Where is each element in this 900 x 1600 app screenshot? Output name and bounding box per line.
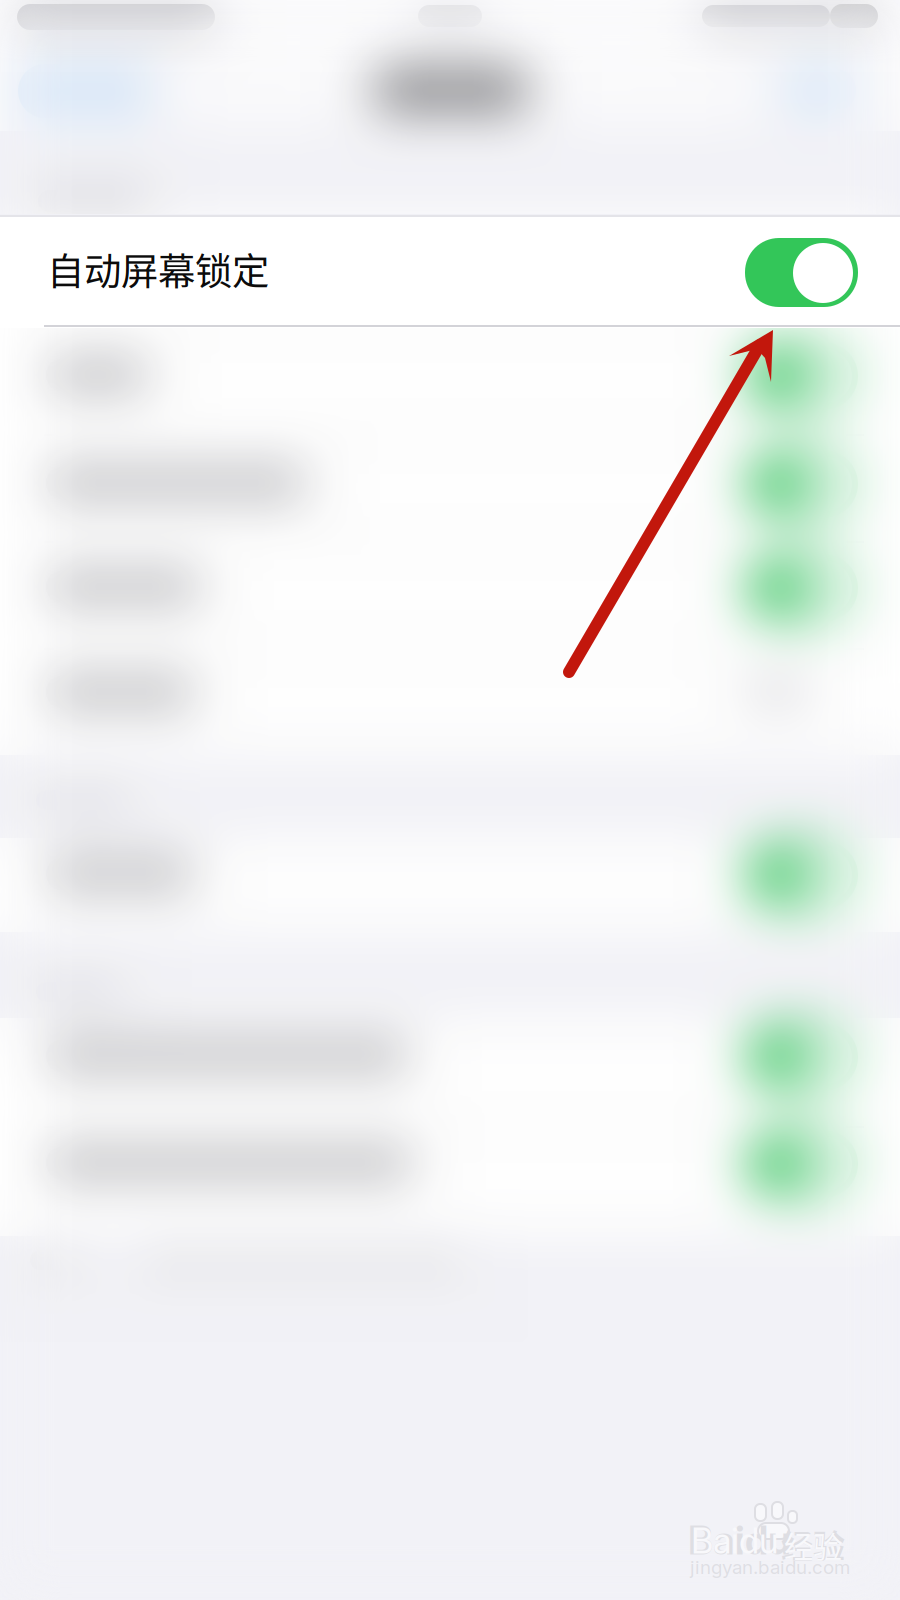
staticText: Baidu bbox=[691, 1520, 778, 1562]
staticText: 经验 bbox=[784, 1524, 842, 1566]
button[interactable]: 自动屏幕锁定 bbox=[0, 217, 900, 327]
staticText: 经验 bbox=[781, 1521, 845, 1567]
staticText: 自动屏幕锁定 bbox=[47, 242, 269, 296]
staticText: Baidu bbox=[688, 1517, 791, 1564]
staticText: jingyan.baidu.com bbox=[690, 1556, 850, 1579]
